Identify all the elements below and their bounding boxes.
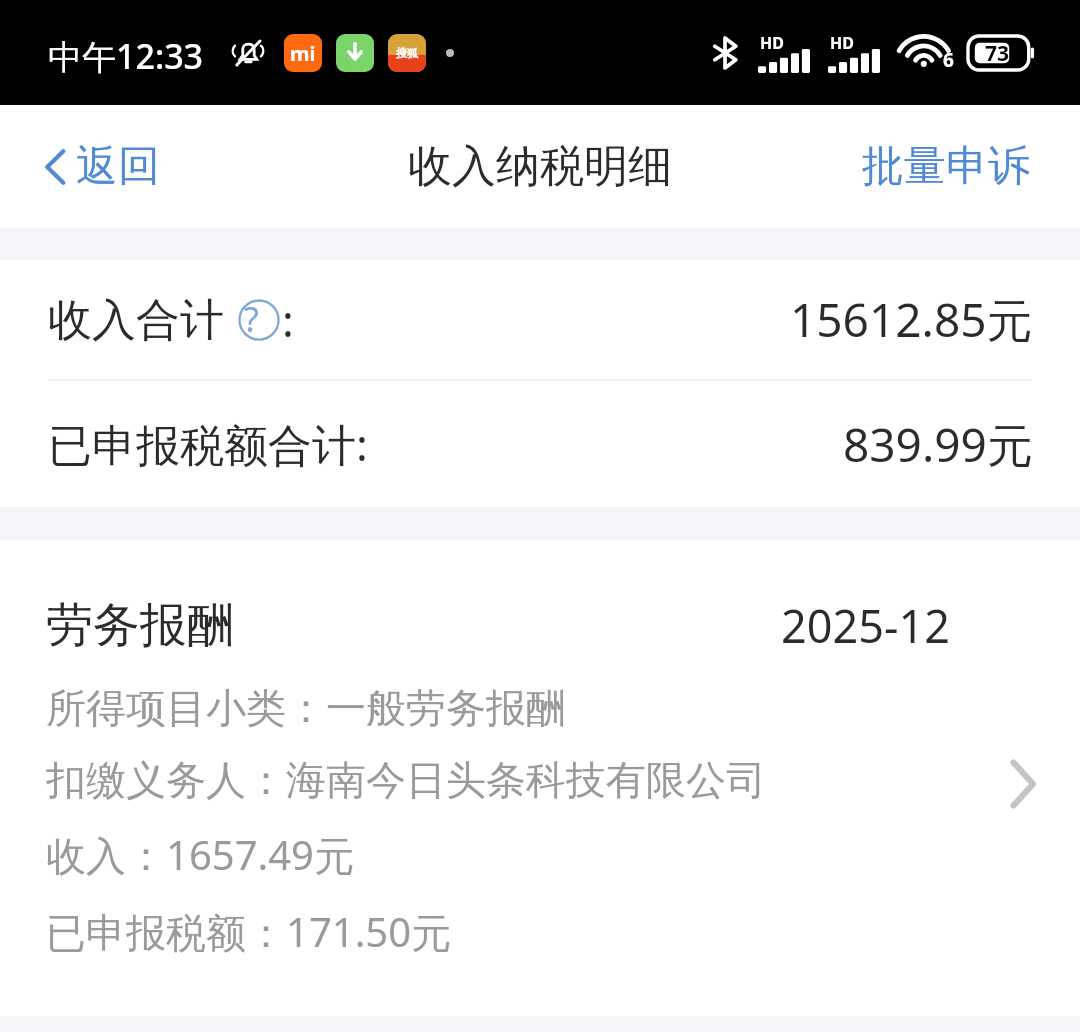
staticText: 6 — [943, 47, 954, 73]
staticText: 收入合计 — [48, 293, 224, 348]
staticText: 劳务报酬 — [46, 596, 234, 655]
staticText: 收入纳税明细 — [408, 139, 672, 194]
staticText: HD — [760, 32, 784, 54]
staticText: 收入：1657.49元 — [46, 827, 354, 882]
staticText: ? — [244, 296, 259, 342]
staticText: 所得项目小类：一般劳务报酬 — [46, 683, 566, 733]
other: 查看详情 — [1008, 757, 1038, 811]
staticText: 15612.85元 — [790, 288, 1033, 351]
staticText: 搜狐 — [396, 46, 418, 60]
other: 说明 — [238, 299, 280, 341]
staticText: 已申报税额合计: — [48, 414, 368, 474]
button[interactable]: 已申报税额合计: — [0, 381, 1080, 507]
staticText: 已申报税额：171.50元 — [46, 904, 452, 959]
button[interactable]: 批量申诉 — [852, 132, 1040, 201]
staticText: HD — [830, 32, 854, 54]
staticText: 返回 — [76, 140, 160, 193]
staticText: mi — [290, 40, 316, 67]
staticText: 2025-12 — [781, 595, 950, 656]
staticText: 扣缴义务人：海南今日头条科技有限公司 — [46, 755, 766, 805]
button[interactable]: 劳务报酬 — [0, 540, 1080, 1016]
button[interactable]: 返回 — [34, 134, 168, 199]
button[interactable]: 收入合计 — [0, 260, 1080, 379]
staticText: 839.99元 — [843, 413, 1033, 476]
staticText: 中午12:33 — [48, 33, 204, 79]
staticText: 批量申诉 — [862, 140, 1030, 193]
staticText: : — [282, 290, 294, 350]
staticText: 73 — [985, 39, 1010, 68]
